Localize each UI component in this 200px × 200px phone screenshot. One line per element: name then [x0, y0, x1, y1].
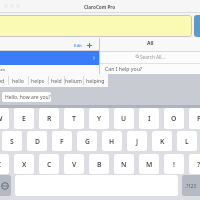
button[interactable]: helping	[83, 74, 107, 87]
button[interactable]: ?	[189, 154, 200, 174]
staticText: O	[171, 114, 177, 123]
button[interactable]: J	[127, 131, 147, 151]
button[interactable]: C	[39, 154, 59, 174]
button[interactable]: R	[39, 108, 59, 129]
staticText: tes	[0, 67, 6, 73]
button[interactable]: F	[52, 131, 72, 151]
staticText: T	[72, 114, 76, 123]
button[interactable]: M	[139, 154, 159, 174]
button[interactable]: Search All...	[100, 51, 200, 62]
button[interactable]: K	[152, 131, 172, 151]
staticText: U	[121, 114, 127, 123]
button[interactable]: S	[2, 131, 22, 151]
button[interactable]: Y	[89, 108, 109, 129]
button[interactable]: H	[102, 131, 122, 151]
staticText: helps	[31, 77, 45, 84]
staticText: N	[121, 160, 127, 169]
staticText: W	[0, 114, 3, 123]
button[interactable]: T	[64, 108, 84, 129]
staticText: D	[35, 137, 40, 146]
button[interactable]: Z	[0, 154, 9, 174]
staticText: H	[109, 137, 115, 146]
staticText: V	[72, 160, 77, 169]
button[interactable]: E	[14, 108, 34, 129]
button[interactable]	[0, 15, 192, 37]
button[interactable]: tes	[0, 65, 99, 75]
button[interactable]: O	[164, 108, 184, 129]
staticText: Search All...	[140, 54, 166, 60]
button[interactable]: W	[0, 108, 9, 129]
button[interactable]: !	[164, 154, 184, 174]
button[interactable]: D	[27, 131, 47, 151]
button[interactable]: Hello, how are you?	[2, 92, 51, 102]
staticText: hello	[12, 77, 24, 84]
button[interactable]: V	[64, 154, 84, 174]
staticText: G	[85, 137, 90, 146]
button[interactable]: Send	[194, 15, 200, 37]
button[interactable]: Emoji keyboard	[0, 175, 11, 196]
button[interactable]: I	[139, 108, 159, 129]
button[interactable]: B	[89, 154, 109, 174]
button[interactable]: Can I help you?	[100, 63, 200, 74]
staticText: ClaroCom Pro	[84, 4, 116, 10]
staticText: C	[47, 160, 52, 169]
button[interactable]: P	[189, 108, 200, 129]
button[interactable]: helps	[28, 74, 48, 87]
staticText: ped	[0, 77, 5, 84]
button[interactable]: U	[114, 108, 134, 129]
button[interactable]	[0, 51, 99, 65]
staticText: ?	[197, 160, 200, 169]
staticText: P	[197, 114, 200, 123]
button[interactable]: L	[177, 131, 197, 151]
staticText: R	[47, 114, 52, 123]
button[interactable]: hello	[8, 74, 28, 87]
button[interactable]: Edit	[74, 42, 82, 48]
button[interactable]: X	[14, 154, 34, 174]
staticText: J	[136, 137, 139, 146]
staticText: !	[173, 160, 175, 169]
button[interactable]: .?123	[182, 175, 200, 196]
staticText: Hello, how are you?	[5, 94, 51, 101]
staticText: L	[185, 137, 189, 146]
button[interactable]: held	[48, 74, 64, 87]
staticText: Can I help you?	[105, 65, 143, 72]
button[interactable]: G	[77, 131, 97, 151]
staticText: .?123	[185, 183, 197, 189]
staticText: X	[22, 160, 27, 169]
staticText: helping	[86, 77, 105, 84]
staticText: helium	[65, 77, 82, 84]
button[interactable]: helium	[64, 74, 83, 87]
staticText: K	[160, 137, 165, 146]
button[interactable]: N	[114, 154, 134, 174]
staticText: M	[146, 160, 153, 169]
staticText: held	[51, 77, 62, 84]
staticText: I	[148, 114, 151, 123]
staticText: F	[60, 137, 64, 146]
staticText: All	[147, 40, 154, 47]
button[interactable]: New message	[85, 41, 93, 49]
button[interactable]: ped	[0, 74, 8, 87]
staticText: S	[10, 137, 14, 146]
staticText: B	[97, 160, 102, 169]
staticText: E	[22, 114, 26, 123]
staticText: Y	[97, 114, 102, 123]
staticText: Z	[0, 160, 1, 169]
